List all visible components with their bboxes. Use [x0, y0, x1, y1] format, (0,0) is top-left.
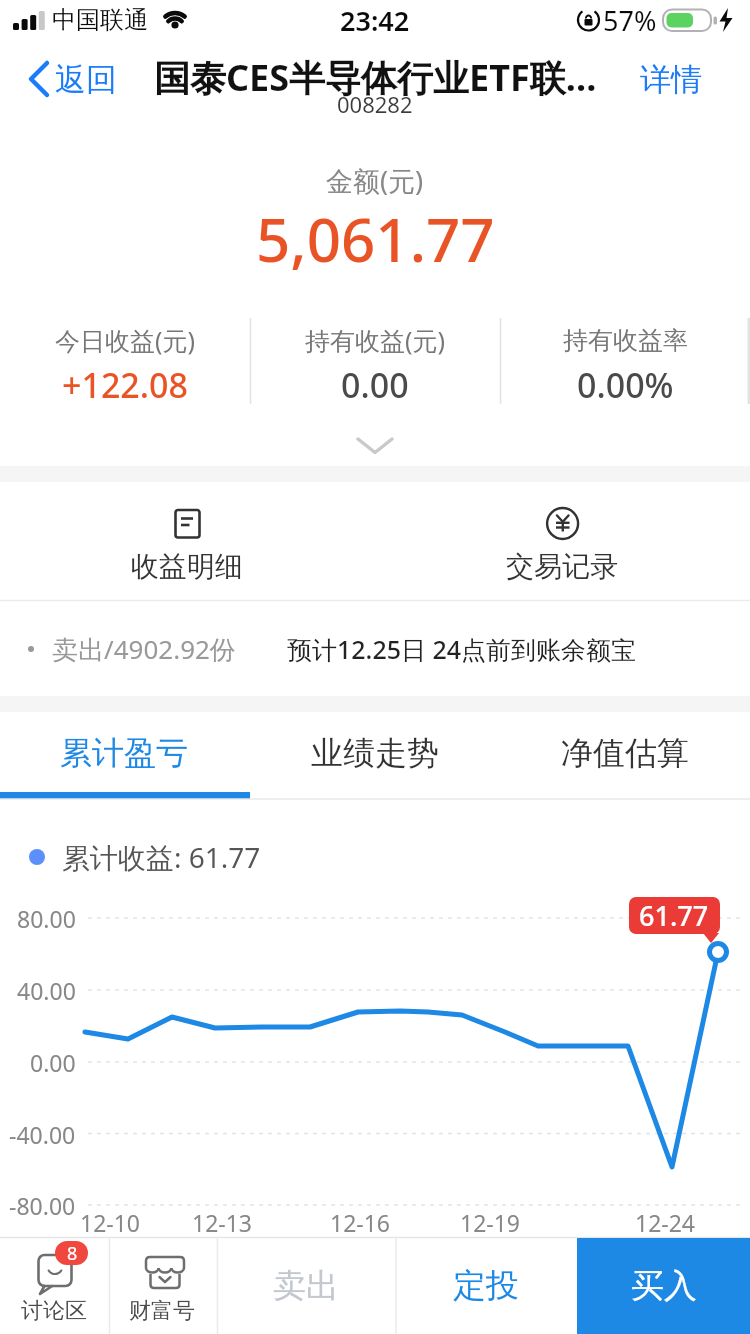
button[interactable] [60, 488, 315, 596]
staticText: 80.00 [17, 903, 76, 934]
button[interactable] [0, 602, 750, 694]
staticText: 累计盈亏 [60, 733, 188, 773]
button[interactable] [0, 712, 250, 800]
staticText: 12-19 [460, 1207, 521, 1238]
staticText: 详情 [640, 60, 702, 99]
staticText: 23:42 [340, 2, 410, 39]
button[interactable] [396, 1238, 577, 1334]
button[interactable] [110, 1238, 217, 1334]
staticText: 金额(元) [326, 162, 424, 199]
staticText: 净值估算 [561, 733, 689, 773]
staticText: 5,061.77 [256, 198, 495, 278]
staticText: 交易记录 [506, 549, 618, 584]
staticText: 40.00 [17, 975, 76, 1006]
button[interactable] [500, 712, 750, 800]
staticText: 中国联通 [52, 5, 148, 35]
staticText: -80.00 [9, 1190, 76, 1221]
staticText: +122.08 [62, 362, 188, 408]
button[interactable] [335, 420, 415, 465]
button[interactable] [577, 1238, 750, 1334]
staticText: 累计收益: 61.77 [62, 838, 261, 876]
staticText: 预计12.25日 24点前到账余额宝 [287, 632, 637, 666]
staticText: 收益明细 [131, 549, 243, 584]
staticText: 今日收益(元) [55, 323, 196, 357]
staticText: 12-16 [330, 1207, 391, 1238]
staticText: 国泰CES半导体行业ETF联… [154, 53, 597, 102]
staticText: 12-10 [80, 1207, 141, 1238]
staticText: 0.00 [341, 362, 409, 408]
staticText: 卖出 [273, 1265, 339, 1307]
button[interactable] [0, 1238, 109, 1334]
staticText: 0.00% [577, 362, 674, 408]
staticText: -40.00 [9, 1119, 76, 1150]
staticText: 返回 [55, 60, 117, 99]
staticText: 12-13 [192, 1207, 253, 1238]
button[interactable] [435, 488, 690, 596]
staticText: 008282 [337, 89, 413, 119]
staticText: 0.00 [30, 1047, 76, 1078]
staticText: 持有收益率 [563, 325, 688, 356]
staticText: 61.77 [639, 897, 709, 934]
staticText: 财富号 [129, 1297, 195, 1325]
staticText: 持有收益(元) [305, 323, 446, 357]
button[interactable] [15, 50, 130, 108]
staticText: 业绩走势 [311, 733, 439, 773]
staticText: 讨论区 [21, 1297, 87, 1325]
button[interactable] [628, 50, 723, 108]
staticText: 8 [67, 1241, 78, 1266]
button[interactable] [218, 1238, 396, 1334]
staticText: 买入 [631, 1265, 697, 1307]
button[interactable] [250, 712, 500, 800]
staticText: 卖出/4902.92份 [52, 631, 236, 667]
staticText: 定投 [453, 1265, 519, 1307]
staticText: 57% [603, 2, 657, 39]
staticText: 12-24 [635, 1207, 696, 1238]
